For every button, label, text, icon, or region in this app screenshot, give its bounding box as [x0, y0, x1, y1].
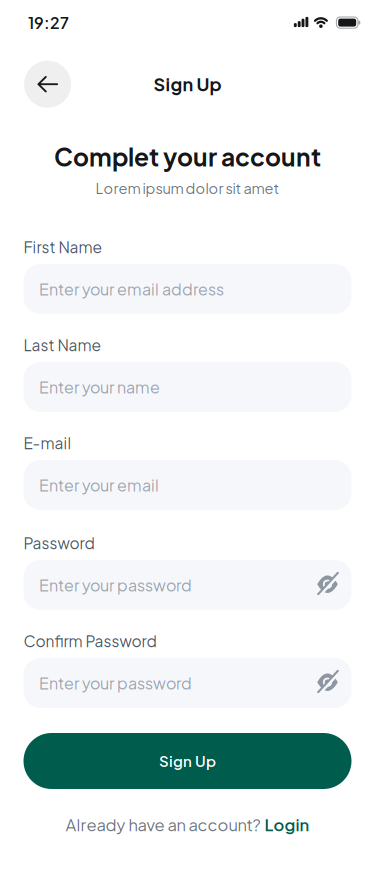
button[interactable]: Enter your password: [23, 560, 351, 610]
button[interactable]: Enter your email: [23, 460, 351, 510]
staticText: Last Name: [23, 335, 101, 355]
button[interactable]: Login: [264, 814, 309, 835]
button[interactable]: Back: [24, 61, 71, 108]
staticText: Enter your name: [39, 377, 160, 397]
staticText: Sign Up: [159, 751, 216, 770]
staticText: Lorem ipsum dolor sit amet: [95, 179, 279, 197]
button[interactable]: Enter your email address: [23, 264, 351, 314]
staticText: Enter your password: [39, 575, 192, 595]
staticText: E-mail: [23, 433, 71, 453]
staticText: Already have an account?: [65, 814, 260, 835]
staticText: 19:27: [28, 12, 69, 33]
button[interactable]: Enter your password: [23, 658, 351, 708]
staticText: First Name: [23, 237, 102, 257]
staticText: Enter your email: [39, 475, 159, 495]
staticText: Sign Up: [153, 73, 221, 95]
staticText: Confirm Password: [23, 631, 156, 651]
staticText: Enter your email address: [39, 279, 224, 299]
staticText: Password: [23, 533, 94, 553]
staticText: Login: [264, 814, 309, 835]
button[interactable]: Show password: [314, 571, 340, 597]
staticText: Enter your password: [39, 673, 192, 693]
staticText: Complet your account: [54, 141, 321, 172]
button[interactable]: Show password: [314, 669, 340, 695]
button[interactable]: Enter your name: [23, 362, 351, 412]
button[interactable]: Sign Up: [23, 733, 351, 789]
